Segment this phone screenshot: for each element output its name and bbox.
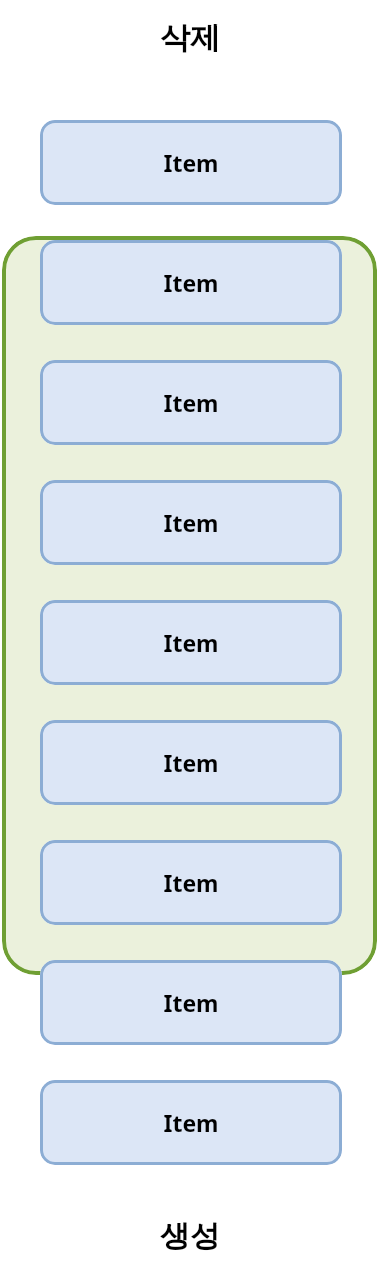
staticText: 생성 xyxy=(160,1217,220,1255)
button[interactable]: Item xyxy=(40,840,342,925)
button[interactable]: Item xyxy=(40,960,342,1045)
button[interactable]: Item xyxy=(40,120,342,205)
staticText: Item xyxy=(163,1107,219,1138)
button[interactable]: 삭제 xyxy=(0,16,380,60)
staticText: Item xyxy=(163,507,219,538)
button[interactable]: Item xyxy=(40,720,342,805)
staticText: Item xyxy=(163,387,219,418)
button[interactable]: Item xyxy=(40,480,342,565)
staticText: Item xyxy=(163,987,219,1018)
staticText: Item xyxy=(163,267,219,298)
staticText: Item xyxy=(163,147,219,178)
staticText: Item xyxy=(163,627,219,658)
staticText: Item xyxy=(163,867,219,898)
button[interactable]: 생성 xyxy=(0,1214,380,1258)
other: Drop zone xyxy=(2,236,377,975)
staticText: 삭제 xyxy=(160,19,220,57)
button[interactable]: Item xyxy=(40,1080,342,1165)
staticText: Item xyxy=(163,747,219,778)
button[interactable]: Item xyxy=(40,240,342,325)
button[interactable]: Item xyxy=(40,360,342,445)
button[interactable]: Item xyxy=(40,600,342,685)
